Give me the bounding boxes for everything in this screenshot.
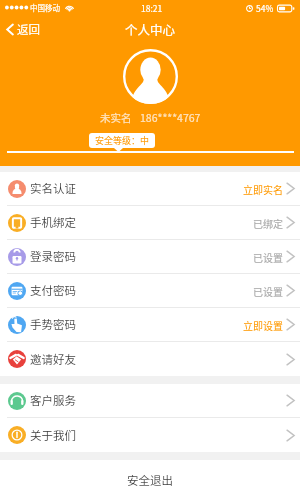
staticText: 手势密码 xyxy=(30,316,76,333)
staticText: 已绑定 xyxy=(253,216,283,230)
staticText: 客户服务 xyxy=(30,392,76,409)
button[interactable]: 返回 xyxy=(0,18,50,41)
staticText: 安全等级：中 xyxy=(95,134,150,147)
staticText: 个人中心 xyxy=(125,20,176,38)
button[interactable]: 手势密码 xyxy=(0,308,300,342)
staticText: 登录密码 xyxy=(30,248,76,265)
staticText: 手机绑定 xyxy=(30,214,76,231)
button[interactable]: 关于我们 xyxy=(0,418,300,452)
button[interactable]: 客户服务 xyxy=(0,384,300,418)
staticText: 返回 xyxy=(17,21,40,38)
staticText: 中国移动 xyxy=(30,2,60,13)
staticText: 已设置 xyxy=(253,250,283,264)
staticText: 已设置 xyxy=(253,284,283,298)
staticText: 实名认证 xyxy=(30,180,76,197)
staticText: 18:21 xyxy=(141,2,163,14)
button[interactable]: 支付密码 xyxy=(0,274,300,308)
staticText: 未实名 xyxy=(100,110,132,125)
staticText: 立即实名 xyxy=(243,182,283,196)
button[interactable]: 手机绑定 xyxy=(0,206,300,240)
staticText: 安全退出 xyxy=(127,472,173,489)
button[interactable]: 实名认证 xyxy=(0,172,300,206)
staticText: 立即设置 xyxy=(243,318,283,332)
staticText: 186****4767 xyxy=(140,110,201,125)
button[interactable]: 邀请好友 xyxy=(0,342,300,376)
staticText: 邀请好友 xyxy=(30,351,76,368)
staticText: 关于我们 xyxy=(30,427,76,444)
staticText: 54% xyxy=(256,2,274,14)
button[interactable]: 安全退出 xyxy=(0,460,300,500)
button[interactable]: 登录密码 xyxy=(0,240,300,274)
staticText: 支付密码 xyxy=(30,282,76,299)
